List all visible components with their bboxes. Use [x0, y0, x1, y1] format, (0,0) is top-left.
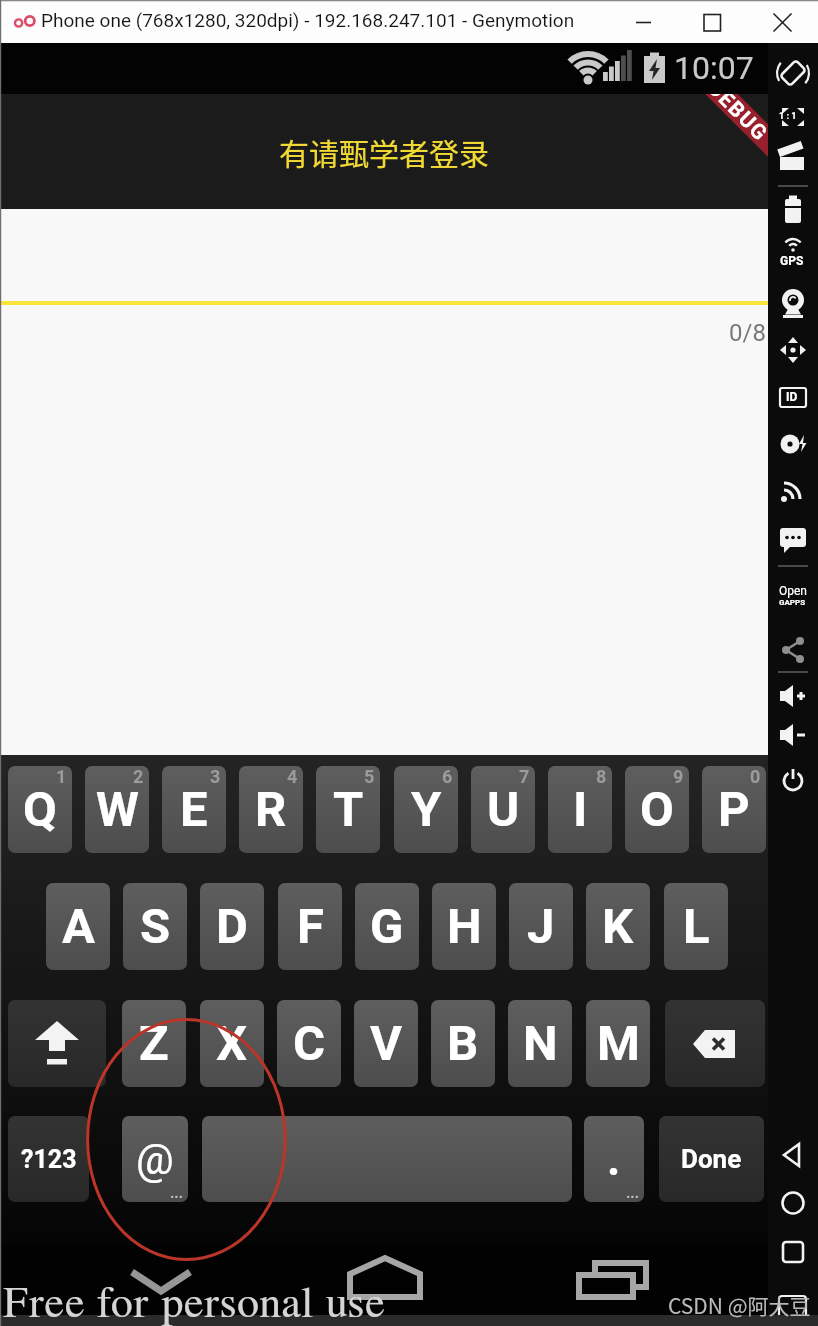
- button[interactable]: D: [200, 883, 264, 970]
- button[interactable]: K: [586, 883, 650, 970]
- button[interactable]: W: [85, 766, 149, 853]
- button[interactable]: N: [508, 1000, 572, 1087]
- staticText: Free for personal use: [3, 1282, 386, 1326]
- staticText: ?123: [21, 1145, 77, 1174]
- button[interactable]: [771, 1135, 815, 1175]
- staticText: 8: [596, 766, 607, 787]
- button[interactable]: L: [664, 883, 728, 970]
- staticText: 0/8: [729, 319, 766, 347]
- button[interactable]: [771, 1232, 815, 1272]
- button[interactable]: [771, 189, 815, 229]
- button[interactable]: B: [431, 1000, 495, 1087]
- button[interactable]: [771, 761, 815, 801]
- staticText: 3: [210, 766, 221, 787]
- staticText: I: [573, 781, 588, 838]
- button[interactable]: [665, 1000, 765, 1087]
- button[interactable]: [771, 283, 815, 323]
- staticText: T: [333, 781, 364, 838]
- staticText: N: [523, 1015, 558, 1072]
- staticText: B: [447, 1015, 479, 1072]
- staticText: CSDN @阿大豆: [668, 1290, 811, 1320]
- button[interactable]: [771, 424, 815, 464]
- button[interactable]: Y: [394, 766, 458, 853]
- staticText: ID: [786, 390, 798, 404]
- button[interactable]: [771, 141, 815, 181]
- staticText: X: [216, 1015, 248, 1072]
- button[interactable]: J: [509, 883, 573, 970]
- button[interactable]: [771, 630, 815, 670]
- staticText: GPS: [780, 254, 804, 268]
- button[interactable]: [335, 1250, 435, 1310]
- staticText: D: [216, 898, 248, 955]
- button[interactable]: [771, 330, 815, 370]
- staticText: 6: [442, 766, 453, 787]
- staticText: 9: [673, 766, 684, 787]
- staticText: 5: [364, 766, 375, 787]
- button[interactable]: [771, 676, 815, 716]
- button[interactable]: [771, 236, 815, 276]
- button[interactable]: [771, 574, 815, 614]
- button[interactable]: U: [471, 766, 535, 853]
- staticText: 1 : 1: [779, 111, 797, 122]
- staticText: ...: [626, 1184, 640, 1202]
- staticText: 4: [287, 766, 298, 787]
- button[interactable]: X: [200, 1000, 264, 1087]
- button[interactable]: .: [584, 1116, 644, 1202]
- staticText: J: [527, 898, 555, 955]
- button[interactable]: O: [625, 766, 689, 853]
- button[interactable]: [771, 715, 815, 755]
- staticText: 1: [56, 766, 67, 787]
- button[interactable]: [8, 1000, 106, 1087]
- button[interactable]: [771, 471, 815, 511]
- button[interactable]: [689, 0, 735, 43]
- staticText: 2: [133, 766, 144, 787]
- staticText: H: [447, 898, 482, 955]
- staticText: 10:07: [674, 49, 754, 87]
- button[interactable]: Q: [8, 766, 72, 853]
- staticText: U: [487, 781, 520, 838]
- button[interactable]: [759, 0, 805, 43]
- staticText: DEBUG: [704, 94, 768, 145]
- staticText: .: [607, 1132, 621, 1186]
- button[interactable]: [771, 53, 815, 93]
- button[interactable]: C: [277, 1000, 341, 1087]
- button[interactable]: S: [123, 883, 187, 970]
- button[interactable]: ?123: [8, 1116, 89, 1202]
- button[interactable]: E: [162, 766, 226, 853]
- button[interactable]: H: [432, 883, 496, 970]
- button[interactable]: V: [354, 1000, 418, 1087]
- staticText: L: [683, 898, 710, 955]
- button[interactable]: G: [355, 883, 419, 970]
- staticText: V: [370, 1015, 403, 1072]
- staticText: G: [370, 898, 404, 955]
- button[interactable]: [620, 0, 666, 43]
- button[interactable]: [771, 1183, 815, 1223]
- button[interactable]: @: [122, 1116, 188, 1202]
- button[interactable]: M: [586, 1000, 650, 1087]
- staticText: F: [297, 898, 324, 955]
- button[interactable]: [202, 1116, 572, 1202]
- staticText: A: [62, 898, 95, 955]
- button[interactable]: [565, 1250, 665, 1310]
- staticText: Done: [681, 1144, 742, 1174]
- button[interactable]: Z: [122, 1000, 186, 1087]
- button[interactable]: A: [46, 883, 110, 970]
- button[interactable]: P: [702, 766, 766, 853]
- staticText: E: [180, 781, 208, 838]
- button[interactable]: T: [316, 766, 380, 853]
- button[interactable]: [771, 97, 815, 137]
- button[interactable]: [771, 377, 815, 417]
- staticText: Q: [23, 781, 57, 838]
- staticText: S: [140, 898, 171, 955]
- button[interactable]: [110, 1255, 210, 1315]
- staticText: O: [640, 781, 674, 838]
- button[interactable]: I: [548, 766, 612, 853]
- button[interactable]: R: [239, 766, 303, 853]
- staticText: GAPPS: [779, 598, 806, 607]
- button[interactable]: F: [278, 883, 342, 970]
- staticText: Y: [411, 781, 442, 838]
- button[interactable]: [771, 518, 815, 558]
- staticText: 有请甄学者登录: [279, 130, 489, 173]
- staticText: Open: [779, 584, 807, 598]
- button[interactable]: Done: [659, 1116, 764, 1202]
